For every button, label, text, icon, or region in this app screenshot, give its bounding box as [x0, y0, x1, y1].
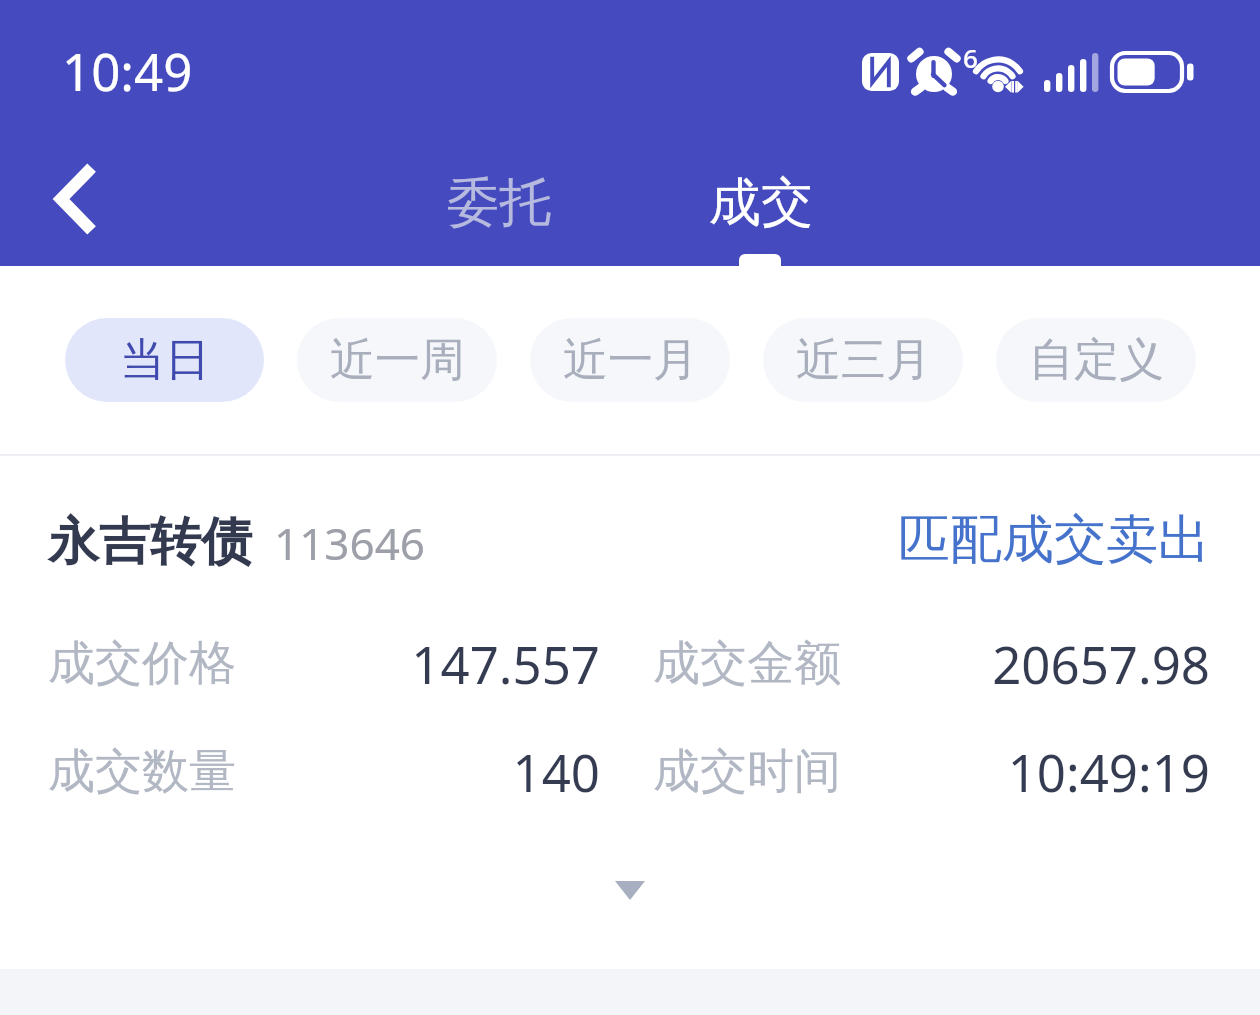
staticText: 113646 [274, 513, 426, 573]
button[interactable]: 当日 [65, 318, 264, 402]
staticText: 20657.98 [841, 629, 1210, 698]
staticText: 近一周 [330, 332, 465, 389]
staticText: 自定义 [1029, 332, 1164, 389]
staticText: 10:49 [62, 36, 193, 105]
staticText: 成交时间 [653, 742, 841, 801]
staticText: 成交价格 [48, 634, 236, 693]
button[interactable]: 永吉转债 [0, 456, 1260, 929]
button[interactable]: 近三月 [763, 318, 963, 402]
staticText: 近三月 [796, 332, 931, 389]
staticText: 6 [963, 40, 978, 75]
staticText: 近一月 [563, 332, 698, 389]
staticText: 成交 [709, 170, 813, 236]
staticText: 匹配成交卖出 [898, 507, 1210, 573]
staticText: 成交数量 [48, 742, 236, 801]
staticText: 当日 [120, 332, 210, 389]
staticText: 10:49:19 [841, 737, 1210, 806]
staticText: 147.557 [48, 629, 600, 698]
button[interactable]: 自定义 [996, 318, 1196, 402]
staticText: 140 [48, 737, 600, 806]
button[interactable]: 委托 [419, 152, 579, 254]
button[interactable]: 成交 [681, 152, 841, 254]
staticText: 成交金额 [653, 634, 841, 693]
button[interactable]: 近一周 [297, 318, 497, 402]
button[interactable]: Expand details [49, 852, 1211, 929]
staticText: 委托 [447, 170, 551, 236]
button[interactable]: 近一月 [530, 318, 730, 402]
staticText: 永吉转债 [48, 510, 252, 574]
button[interactable]: Back [27, 153, 119, 245]
